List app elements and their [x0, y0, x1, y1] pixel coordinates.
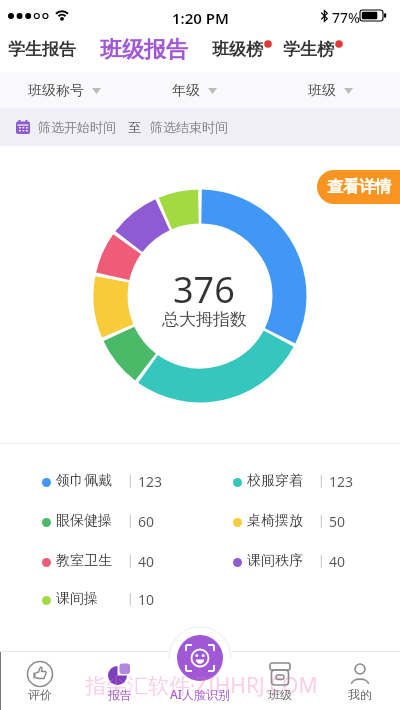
staticText: 50 — [329, 512, 346, 531]
staticText: 10 — [138, 590, 155, 609]
button[interactable]: 班级报告 — [100, 36, 188, 64]
staticText: 教室卫生 — [56, 552, 112, 570]
button[interactable]: 筛选开始时间 — [0, 108, 400, 146]
staticText: 课间秩序 — [247, 552, 303, 570]
button[interactable]: 班级榜 — [212, 39, 263, 60]
staticText: 40 — [138, 552, 155, 571]
staticText: 筛选结束时间 — [150, 119, 228, 135]
button[interactable]: 我的 — [328, 655, 392, 710]
button[interactable]: 报告 — [88, 655, 152, 710]
staticText: 班级报告 — [100, 36, 188, 64]
button[interactable]: 查看详情 — [317, 170, 400, 204]
button[interactable]: 班级称号 — [28, 80, 101, 102]
staticText: 376 — [173, 265, 235, 314]
staticText: 学生报告 — [8, 39, 76, 60]
staticText: AI人脸识别 — [170, 686, 231, 702]
staticText: 60 — [138, 512, 155, 531]
staticText: 班级 — [268, 687, 292, 702]
staticText: 班级榜 — [212, 39, 263, 60]
button[interactable]: 学生报告 — [8, 39, 76, 60]
staticText: 学生榜 — [283, 39, 334, 60]
staticText: 年级 — [172, 82, 200, 100]
staticText: 总大拇指数 — [162, 309, 247, 330]
button[interactable] — [177, 635, 223, 681]
staticText: 眼保健操 — [56, 512, 112, 530]
button[interactable]: 年级 — [172, 80, 217, 102]
staticText: 丨 — [124, 591, 137, 607]
button[interactable]: 班级 — [308, 80, 353, 102]
staticText: 77% — [332, 8, 360, 27]
staticText: 123 — [329, 472, 354, 491]
staticText: 评价 — [28, 687, 52, 702]
staticText: 1:20 PM — [172, 8, 229, 28]
staticText: 筛选开始时间 — [38, 119, 116, 135]
staticText: 丨 — [315, 473, 328, 489]
staticText: 校服穿着 — [247, 472, 303, 490]
staticText: 丨 — [315, 553, 328, 569]
button[interactable]: 评价 — [8, 655, 72, 710]
staticText: 班级称号 — [28, 82, 84, 100]
button[interactable]: 学生榜 — [283, 39, 334, 60]
staticText: 领巾佩戴 — [56, 472, 112, 490]
staticText: 指尖汇软件·ZIHHRJ.COM — [85, 671, 318, 700]
staticText: 查看详情 — [327, 177, 391, 197]
staticText: 丨 — [315, 513, 328, 529]
button[interactable]: 班级 — [248, 655, 312, 710]
staticText: 课间操 — [56, 590, 98, 608]
staticText: 40 — [329, 552, 346, 571]
staticText: 123 — [138, 472, 163, 491]
staticText: 我的 — [348, 687, 372, 702]
staticText: 桌椅摆放 — [247, 512, 303, 530]
staticText: 丨 — [124, 473, 137, 489]
staticText: 至 — [128, 119, 141, 135]
staticText: 丨 — [124, 553, 137, 569]
staticText: 报告 — [108, 687, 132, 702]
staticText: 丨 — [124, 513, 137, 529]
staticText: 班级 — [308, 82, 336, 100]
